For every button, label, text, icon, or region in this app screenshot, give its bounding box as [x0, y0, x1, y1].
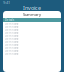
staticText: Item name [5, 46, 19, 50]
staticText: Item name [5, 43, 19, 47]
staticText: Item name [5, 28, 19, 32]
staticText: Summary [23, 12, 41, 17]
staticText: Item name [5, 22, 19, 26]
staticText: Item name [5, 34, 19, 38]
staticText: Item name [5, 40, 19, 44]
staticText: Item name [5, 31, 19, 35]
staticText: Item name [5, 37, 19, 41]
staticText: Item name [5, 49, 19, 53]
staticText: Item name [5, 52, 19, 56]
staticText: Invoice [23, 4, 41, 12]
staticText: Item name [5, 25, 19, 29]
staticText: Details [5, 18, 14, 22]
staticText: 9:41 [3, 0, 10, 5]
